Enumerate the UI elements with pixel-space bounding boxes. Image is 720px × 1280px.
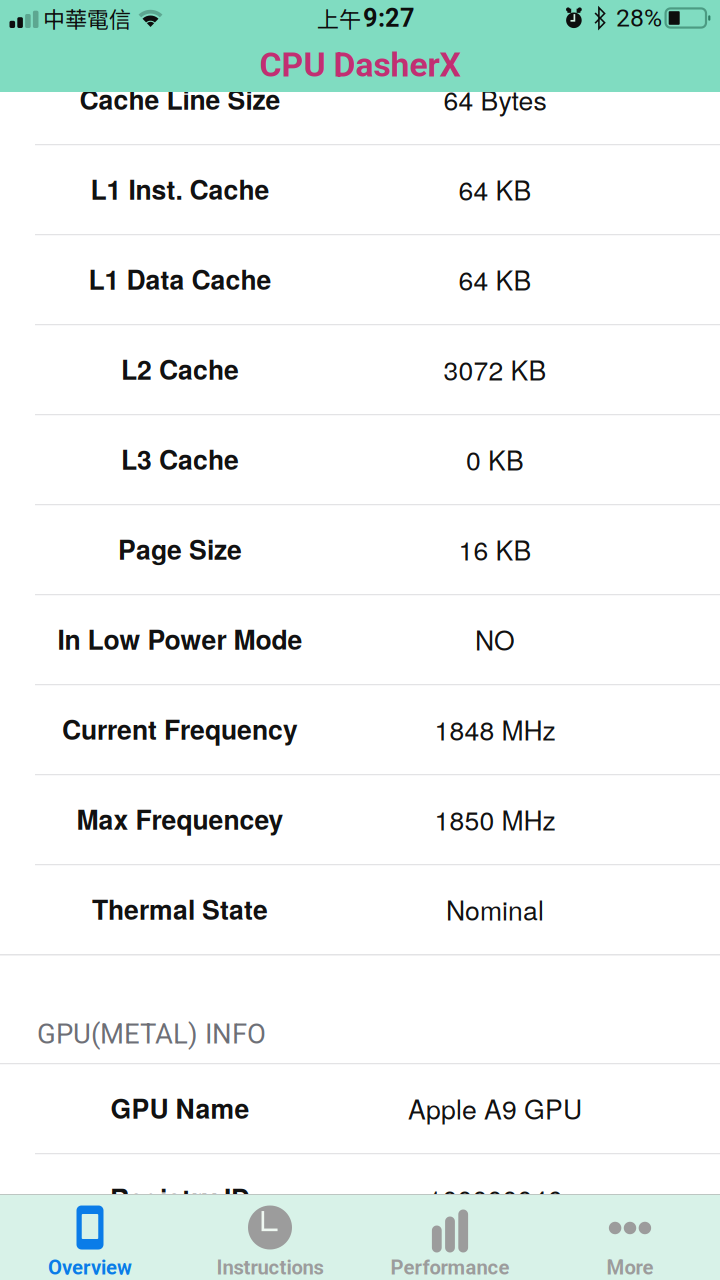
button[interactable]: Registry ID [0, 1154, 720, 1244]
staticText: More [606, 1256, 653, 1279]
staticText: 100000046 [427, 1179, 562, 1217]
button[interactable]: L3 Cache [0, 415, 720, 505]
button[interactable]: GPU Name [0, 1064, 720, 1154]
staticText: 64 KB [458, 170, 531, 208]
button[interactable]: CPU DasherX [0, 44, 720, 92]
staticText: Cache Line Size [79, 80, 280, 118]
staticText: L3 Cache [121, 440, 239, 478]
button[interactable]: Current Frequency [0, 685, 720, 775]
staticText: Performance [390, 1256, 509, 1279]
staticText: 中華電信 [43, 2, 131, 34]
staticText: NO [475, 620, 515, 658]
button[interactable]: Overview [0, 1194, 180, 1280]
staticText: Instructions [216, 1256, 323, 1279]
staticText: Registry ID [110, 1179, 250, 1217]
staticText: Thermal State [92, 890, 268, 928]
staticText: GPU(METAL) INFO [37, 1018, 266, 1050]
button[interactable]: Thermal State [0, 865, 720, 955]
staticText: 64 KB [458, 260, 531, 298]
staticText: 64 Bytes [443, 80, 546, 118]
staticText: Overview [48, 1256, 132, 1279]
staticText: 1850 MHz [434, 800, 555, 838]
button[interactable]: L1 Data Cache [0, 235, 720, 325]
button[interactable]: Max Frequencey [0, 775, 720, 865]
staticText: In Low Power Mode [57, 620, 302, 658]
staticText: L1 Inst. Cache [90, 170, 269, 208]
staticText: 16 KB [458, 530, 531, 568]
staticText: 1848 MHz [434, 710, 555, 748]
staticText: 9:27 [363, 3, 415, 33]
button[interactable]: L1 Inst. Cache [0, 145, 720, 235]
button[interactable]: Cache Line Size [0, 55, 720, 145]
staticText: CPU DasherX [259, 45, 460, 85]
staticText: Page Size [118, 530, 242, 568]
staticText: Apple A9 GPU [408, 1089, 582, 1127]
staticText: Nominal [446, 890, 544, 928]
button[interactable]: Page Size [0, 505, 720, 595]
button[interactable]: Instructions [180, 1194, 360, 1280]
staticText: L2 Cache [121, 350, 239, 388]
button[interactable]: In Low Power Mode [0, 595, 720, 685]
button[interactable]: L2 Cache [0, 325, 720, 415]
staticText: GPU Name [110, 1089, 249, 1127]
staticText: 0 KB [466, 440, 524, 478]
staticText: Current Frequency [62, 710, 298, 748]
staticText: 3072 KB [443, 350, 546, 388]
staticText: L1 Data Cache [88, 260, 271, 298]
staticText: 上午 [317, 2, 361, 34]
staticText: 28% [616, 3, 662, 33]
button[interactable]: Performance [360, 1194, 540, 1280]
button[interactable]: More [540, 1194, 720, 1280]
staticText: Max Frequencey [76, 800, 283, 838]
